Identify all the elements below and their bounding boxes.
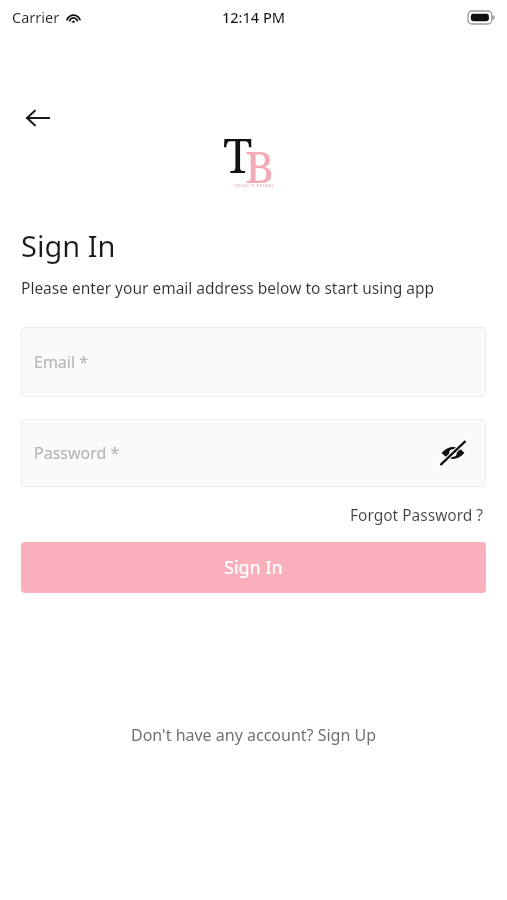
button[interactable]: Back <box>16 96 60 140</box>
staticText: B <box>245 136 274 196</box>
staticText: Please enter your email address below to… <box>21 277 435 298</box>
staticText: T <box>223 122 253 187</box>
staticText: Don't have any account? Sign Up <box>131 724 376 746</box>
button[interactable]: Forgot Password ? <box>348 501 486 528</box>
staticText: Password * <box>34 442 120 464</box>
button[interactable]: Email * <box>21 327 486 397</box>
staticText: Forgot Password ? <box>350 504 484 525</box>
staticText: TOTALLY BRIDAL <box>234 183 275 188</box>
staticText: Carrier <box>12 7 60 27</box>
staticText: 12:14 PM <box>222 7 286 27</box>
button[interactable]: Sign In <box>21 542 486 593</box>
staticText: Email * <box>34 351 89 373</box>
button[interactable]: Show password <box>438 438 468 468</box>
button[interactable]: Don't have any account? Sign Up <box>123 718 384 752</box>
staticText: Sign In <box>224 555 283 580</box>
button[interactable]: Password * <box>21 419 486 487</box>
staticText: Sign In <box>21 226 116 265</box>
